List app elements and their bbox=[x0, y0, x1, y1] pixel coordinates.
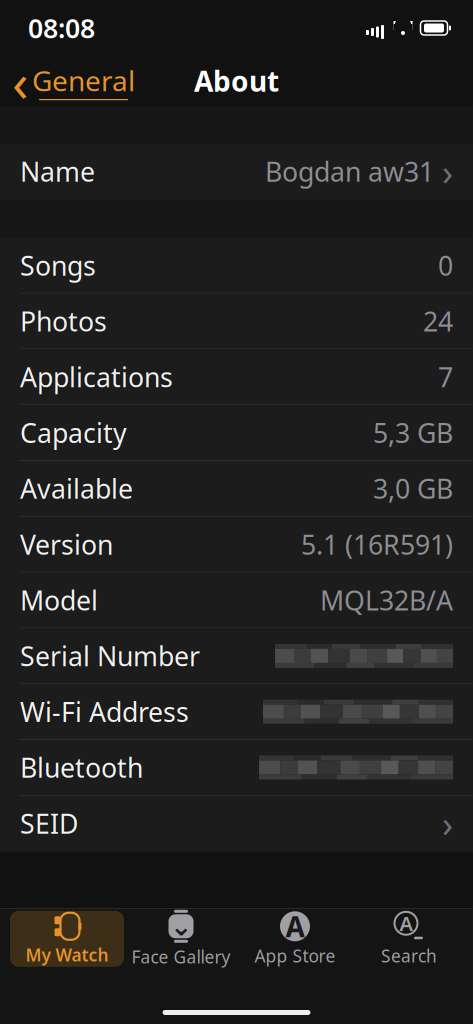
staticText: Search bbox=[381, 944, 437, 967]
staticText: 24 bbox=[423, 303, 453, 339]
button[interactable]: A bbox=[352, 911, 466, 967]
button[interactable]: SEID bbox=[0, 796, 473, 852]
staticText: Version bbox=[20, 527, 113, 562]
button[interactable]: Serial Number bbox=[0, 628, 473, 684]
staticText: Available bbox=[20, 471, 133, 506]
button[interactable]: A bbox=[238, 911, 352, 967]
staticText: 0 bbox=[438, 248, 453, 283]
staticText: MQL32B/A bbox=[320, 582, 453, 618]
staticText: 5.1 (16R591) bbox=[301, 527, 453, 562]
button[interactable]: Songs bbox=[0, 238, 473, 294]
button[interactable]: Available bbox=[0, 461, 473, 517]
staticText: 5,3 GB bbox=[373, 415, 453, 450]
staticText: A bbox=[285, 908, 304, 945]
staticText: 08:08 bbox=[28, 10, 95, 46]
staticText: Model bbox=[20, 582, 98, 618]
staticText: 3,0 GB bbox=[373, 471, 453, 506]
staticText: Photos bbox=[20, 303, 107, 339]
staticText: Face Gallery bbox=[131, 945, 230, 968]
staticText: My Watch bbox=[25, 943, 108, 966]
staticText: 7 bbox=[438, 359, 453, 395]
button[interactable]: Photos bbox=[0, 294, 473, 349]
staticText: General bbox=[32, 62, 135, 99]
button[interactable]: ⌄ bbox=[124, 911, 238, 967]
button[interactable]: Wi-Fi Address bbox=[0, 684, 473, 740]
button[interactable]: Bluetooth bbox=[0, 740, 473, 796]
staticText: ‹ bbox=[12, 46, 29, 116]
staticText: Applications bbox=[20, 359, 173, 395]
staticText: SEID bbox=[20, 806, 78, 841]
staticText: App Store bbox=[254, 944, 335, 967]
button[interactable]: Applications bbox=[0, 349, 473, 405]
staticText: ⌄ bbox=[170, 911, 192, 941]
button[interactable]: Model bbox=[0, 573, 473, 628]
button[interactable]: Version bbox=[0, 517, 473, 573]
staticText: Songs bbox=[20, 248, 96, 283]
staticText: › bbox=[442, 799, 453, 847]
button[interactable]: My Watch bbox=[10, 911, 124, 967]
staticText: A bbox=[399, 910, 412, 937]
staticText: Capacity bbox=[20, 415, 127, 450]
button[interactable]: Name bbox=[0, 144, 473, 200]
staticText: Bluetooth bbox=[20, 750, 143, 785]
button[interactable]: Capacity bbox=[0, 405, 473, 461]
staticText: Name bbox=[20, 154, 95, 189]
staticText: Serial Number bbox=[20, 638, 200, 674]
staticText: Wi-Fi Address bbox=[20, 694, 189, 729]
staticText: › bbox=[442, 148, 453, 195]
staticText: Bogdan aw31 bbox=[265, 154, 434, 189]
button[interactable]: ‹ bbox=[0, 58, 145, 104]
staticText: About bbox=[194, 62, 279, 100]
